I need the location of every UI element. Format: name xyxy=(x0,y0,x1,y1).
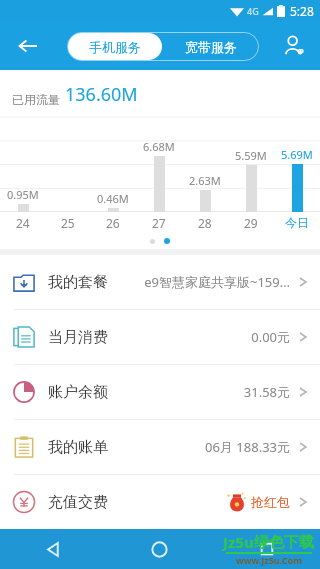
button[interactable]: Back xyxy=(0,529,106,569)
staticText: 5.59M xyxy=(235,148,267,163)
staticText: 我的账单 xyxy=(48,438,108,457)
staticText: 2.63M xyxy=(189,173,221,188)
staticText: 5:28 xyxy=(290,3,314,19)
button[interactable]: Account xyxy=(274,26,314,66)
button[interactable]: 充值交费 xyxy=(0,475,320,529)
staticText: 4G xyxy=(247,5,259,17)
button[interactable]: 宽带服务 xyxy=(163,32,259,61)
staticText: 我的套餐 xyxy=(48,273,108,292)
staticText: 29 xyxy=(244,215,258,231)
staticText: 0.46M xyxy=(97,191,129,206)
staticText: 06月 188.33元 xyxy=(205,438,290,456)
button[interactable]: 我的账单 xyxy=(0,420,320,474)
staticText: 充值交费 xyxy=(48,493,108,512)
button[interactable]: 当月消费 xyxy=(0,310,320,364)
staticText: Jz5u xyxy=(223,532,254,552)
button[interactable]: 账户余额 xyxy=(0,365,320,419)
staticText: 136.60M xyxy=(65,82,138,107)
staticText: 27 xyxy=(152,215,166,231)
button[interactable]: 我的套餐 xyxy=(0,255,320,309)
staticText: 手机服务 xyxy=(89,39,141,55)
staticText: 0.95M xyxy=(7,187,39,202)
staticText: 0.00元 xyxy=(251,328,290,346)
button[interactable]: Recents xyxy=(213,529,320,569)
button[interactable]: 手机服务 xyxy=(68,33,162,60)
staticText: 5.69M xyxy=(281,147,313,162)
button[interactable]: Back xyxy=(8,26,48,66)
staticText: 宽带服务 xyxy=(185,39,237,55)
button[interactable]: Home xyxy=(106,529,213,569)
staticText: 今日 xyxy=(285,215,309,230)
staticText: 28 xyxy=(198,215,212,231)
staticText: www.Jz5u.Com xyxy=(236,554,302,566)
staticText: 已用流量 xyxy=(12,92,60,107)
staticText: 25 xyxy=(61,215,75,231)
staticText: e9智慧家庭共享版~159… xyxy=(144,273,290,291)
staticText: 24 xyxy=(16,215,30,231)
staticText: 账户余额 xyxy=(48,383,108,402)
staticText: 绿色下载 xyxy=(254,533,314,552)
staticText: 31.58元 xyxy=(243,383,290,401)
staticText: 6.68M xyxy=(143,139,175,154)
staticText: 抢红包 xyxy=(251,494,290,510)
staticText: 26 xyxy=(106,215,120,231)
staticText: 当月消费 xyxy=(48,328,108,347)
